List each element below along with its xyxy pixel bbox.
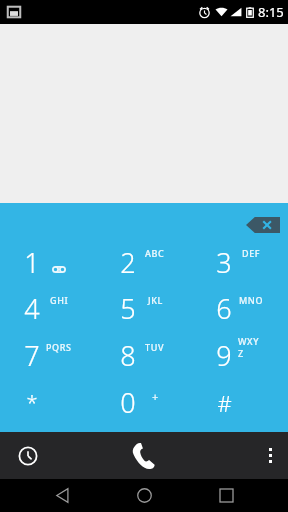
button[interactable]: 7 (0, 332, 96, 379)
button[interactable]: More options (252, 432, 288, 479)
staticText: TUV (145, 341, 165, 353)
staticText: 0 (120, 384, 136, 421)
staticText: WXYZ (238, 335, 264, 359)
button[interactable]: # (192, 379, 288, 426)
staticText: # (217, 388, 232, 418)
button[interactable]: * (0, 379, 96, 426)
staticText: DEF (242, 247, 261, 259)
button[interactable]: 9 (192, 332, 288, 379)
staticText: 1 (24, 244, 40, 281)
staticText: PQRS (46, 341, 72, 353)
staticText: 8 (120, 337, 136, 374)
button[interactable]: Call history (0, 432, 56, 479)
staticText: 7 (24, 337, 40, 374)
button[interactable]: 1 (0, 239, 96, 285)
button[interactable]: Backspace (246, 217, 280, 233)
staticText: GHI (50, 294, 69, 306)
staticText: MNO (239, 294, 264, 306)
button[interactable]: 8 (96, 332, 192, 379)
staticText: 2 (120, 244, 136, 281)
button[interactable]: 0 (96, 379, 192, 426)
button[interactable]: Recents (206, 479, 246, 512)
staticText: 3 (216, 244, 232, 281)
staticText: + (152, 389, 159, 404)
staticText: 4 (24, 290, 40, 327)
button[interactable]: 5 (96, 285, 192, 332)
button[interactable]: 3 (192, 239, 288, 285)
staticText: JKL (148, 294, 163, 306)
staticText: ABC (145, 247, 165, 259)
button[interactable]: Home (124, 479, 164, 512)
staticText: 9 (216, 337, 232, 374)
staticText: * (26, 389, 38, 416)
button[interactable]: Dialer (108, 432, 180, 479)
button[interactable]: Back (42, 479, 82, 512)
button[interactable]: 6 (192, 285, 288, 332)
staticText: 8:15 (258, 3, 284, 21)
button[interactable]: 4 (0, 285, 96, 332)
staticText: 5 (120, 290, 136, 327)
staticText: 6 (216, 290, 232, 327)
button[interactable]: 2 (96, 239, 192, 285)
